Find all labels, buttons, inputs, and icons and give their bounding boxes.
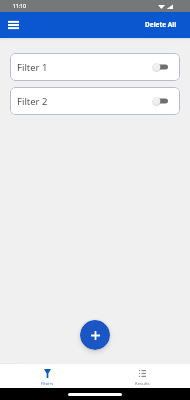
button[interactable]: Add filter <box>80 320 110 350</box>
button[interactable]: Filter 2 <box>10 87 180 115</box>
button[interactable]: Menu <box>3 15 23 35</box>
button[interactable]: Toggle filter <box>152 94 169 108</box>
button[interactable]: Results <box>95 364 190 388</box>
staticText: Filters <box>41 380 54 386</box>
staticText: Results <box>135 380 150 386</box>
staticText: Filter 2 <box>17 95 48 108</box>
staticText: Delete All <box>145 20 177 29</box>
staticText: Filter 1 <box>17 61 48 74</box>
button[interactable]: Filter 1 <box>10 53 180 81</box>
button[interactable]: Filters <box>0 364 95 388</box>
button[interactable]: Toggle filter <box>152 60 169 74</box>
staticText: 11:10 <box>13 3 26 10</box>
button[interactable]: Delete All <box>132 15 190 34</box>
